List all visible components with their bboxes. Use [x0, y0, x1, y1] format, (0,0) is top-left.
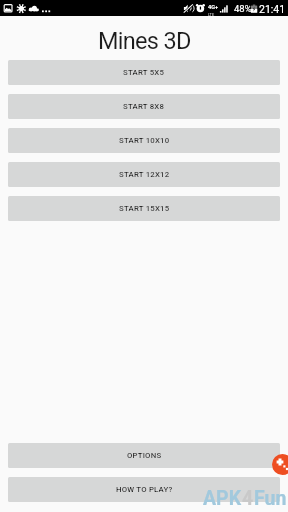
button[interactable]: START 12X12: [8, 162, 280, 187]
button[interactable]: START 15X15: [8, 196, 280, 221]
staticText: APK: [203, 487, 242, 510]
staticText: LTE: [208, 12, 215, 16]
staticText: 4G+: [208, 4, 219, 11]
staticText: START 15X15: [119, 204, 170, 213]
staticText: HOW TO PLAY?: [116, 485, 173, 494]
staticText: START 5X5: [123, 68, 165, 77]
button[interactable]: HOW TO PLAY?: [8, 477, 280, 502]
staticText: Fun: [254, 487, 287, 510]
staticText: 48%: [234, 3, 252, 14]
staticText: 21:41: [259, 3, 286, 15]
button[interactable]: OPTIONS: [8, 443, 280, 468]
staticText: OPTIONS: [127, 451, 162, 460]
staticText: START 12X12: [119, 170, 170, 179]
staticText: Mines 3D: [98, 27, 191, 55]
staticText: 4: [242, 487, 254, 510]
button[interactable]: START 8X8: [8, 94, 280, 119]
button[interactable]: START 10X10: [8, 128, 280, 153]
staticText: START 8X8: [123, 102, 165, 111]
staticText: START 10X10: [119, 136, 170, 145]
button[interactable]: START 5X5: [8, 60, 280, 85]
